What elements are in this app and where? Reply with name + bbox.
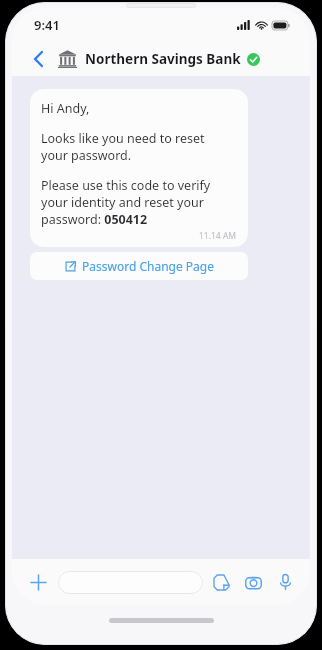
staticText: Please use this code to verify your iden… bbox=[41, 177, 211, 228]
staticText: Password Change Page bbox=[82, 258, 214, 274]
button[interactable]: Message input bbox=[58, 571, 203, 594]
button[interactable]: Voice message bbox=[273, 570, 297, 594]
staticText: Looks like you need to reset your passwo… bbox=[41, 130, 205, 164]
button[interactable]: Add attachment bbox=[25, 569, 51, 595]
staticText: 9:41 bbox=[34, 16, 60, 34]
button[interactable]: Hi Andy, bbox=[30, 89, 248, 247]
button[interactable]: Stickers bbox=[209, 570, 233, 594]
staticText: Hi Andy, bbox=[41, 100, 90, 117]
button[interactable]: Password Change Page bbox=[30, 252, 248, 280]
button[interactable]: Camera bbox=[241, 570, 265, 594]
button[interactable]: Back bbox=[26, 47, 50, 71]
staticText: 11.14 AM bbox=[199, 230, 237, 242]
staticText: Northern Savings Bank bbox=[85, 50, 241, 68]
